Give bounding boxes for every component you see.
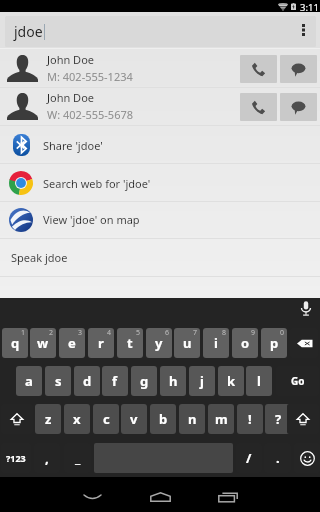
button[interactable]: i	[203, 328, 229, 358]
button[interactable]: !	[237, 404, 263, 434]
button[interactable]: w	[30, 328, 56, 358]
staticText: 1	[21, 328, 26, 338]
staticText: M: 402-555-1234	[47, 69, 133, 84]
button[interactable]: _	[64, 443, 91, 473]
staticText: h	[169, 372, 178, 390]
staticText: v	[130, 410, 138, 428]
button[interactable]: h	[160, 366, 186, 396]
staticText: l	[257, 372, 261, 390]
staticText: z	[45, 410, 52, 428]
staticText: W: 402-555-5678	[47, 107, 134, 122]
button[interactable]: z	[35, 404, 61, 434]
button[interactable]: g	[131, 366, 157, 396]
button[interactable]: Speak jdoe	[0, 238, 320, 276]
staticText: e	[68, 334, 76, 352]
staticText: t	[127, 334, 133, 352]
button[interactable]: Backspace	[290, 328, 318, 358]
button[interactable]: r	[88, 328, 114, 358]
staticText: 7	[193, 328, 198, 338]
button[interactable]: John Doe	[0, 49, 320, 88]
button[interactable]: e	[59, 328, 85, 358]
button[interactable]: Hide keyboard	[68, 485, 116, 509]
button[interactable]: Message	[280, 93, 317, 121]
button[interactable]: Call	[240, 93, 277, 121]
button[interactable]: f	[102, 366, 128, 396]
button[interactable]: l	[246, 366, 272, 396]
button[interactable]: Recent apps	[204, 485, 252, 509]
button[interactable]: Shift	[1, 404, 33, 434]
button[interactable]: ?123	[1, 443, 31, 473]
staticText: n	[188, 410, 197, 428]
staticText: Search web for 'jdoe'	[43, 176, 151, 191]
button[interactable]: n	[179, 404, 205, 434]
staticText: 3:11	[300, 1, 319, 14]
button[interactable]: s	[45, 366, 71, 396]
button[interactable]: a	[16, 366, 42, 396]
button[interactable]: j	[189, 366, 215, 396]
staticText: i	[214, 334, 218, 352]
button[interactable]: Share 'jdoe'	[0, 126, 320, 164]
staticText: o	[241, 334, 250, 352]
button[interactable]: John Doe	[0, 87, 320, 126]
staticText: ,	[45, 449, 49, 467]
staticText: John Doe	[47, 52, 95, 67]
staticText: !	[248, 410, 252, 428]
staticText: Speak jdoe	[11, 250, 68, 265]
button[interactable]: d	[74, 366, 100, 396]
button[interactable]: k	[218, 366, 244, 396]
staticText: 9	[251, 328, 256, 338]
button[interactable]: v	[121, 404, 147, 434]
staticText: 4	[107, 328, 112, 338]
button[interactable]: q	[2, 328, 28, 358]
button[interactable]: jdoe	[5, 16, 316, 47]
button[interactable]: Home	[136, 485, 184, 509]
staticText: d	[83, 372, 92, 390]
staticText: John Doe	[47, 90, 95, 105]
staticText: 3	[78, 328, 83, 338]
button[interactable]: b	[150, 404, 176, 434]
staticText: ?123	[6, 452, 26, 464]
button[interactable]: u	[174, 328, 200, 358]
button[interactable]: Call	[240, 55, 277, 83]
button[interactable]: c	[93, 404, 119, 434]
button[interactable]: .	[264, 443, 291, 473]
button[interactable]: t	[117, 328, 143, 358]
staticText: ?	[275, 410, 282, 428]
button[interactable]: /	[236, 443, 262, 473]
staticText: b	[159, 410, 168, 428]
staticText: 8	[222, 328, 227, 338]
staticText: 6	[165, 328, 170, 338]
staticText: r	[98, 334, 104, 352]
staticText: f	[112, 372, 118, 390]
button[interactable]: View 'jdoe' on map	[0, 201, 320, 238]
staticText: x	[73, 410, 81, 428]
staticText: View 'jdoe' on map	[43, 212, 140, 227]
staticText: y	[155, 334, 163, 352]
staticText: Go	[291, 374, 305, 388]
staticText: .	[276, 449, 280, 467]
button[interactable]: Emoji	[294, 443, 320, 473]
button[interactable]: Go	[276, 366, 319, 396]
staticText: 5	[136, 328, 141, 338]
staticText: 0	[280, 328, 285, 338]
button[interactable]: x	[64, 404, 90, 434]
button[interactable]: ,	[34, 443, 60, 473]
button[interactable]: m	[208, 404, 234, 434]
button[interactable]: More options	[290, 13, 316, 47]
button[interactable]: p	[261, 328, 287, 358]
staticText: Share 'jdoe'	[43, 138, 103, 153]
button[interactable]: Search web for 'jdoe'	[0, 164, 320, 202]
button[interactable]: ?	[265, 404, 291, 434]
staticText: jdoe	[14, 22, 43, 41]
button[interactable]: Message	[280, 55, 317, 83]
staticText: p	[270, 334, 279, 352]
staticText: u	[183, 334, 192, 352]
button[interactable]: Shift	[287, 404, 319, 434]
staticText: j	[200, 372, 204, 390]
button[interactable]: y	[146, 328, 172, 358]
button[interactable]: o	[232, 328, 258, 358]
staticText: s	[55, 372, 62, 390]
staticText: m	[215, 410, 228, 428]
button[interactable]: Voice input	[298, 299, 314, 317]
